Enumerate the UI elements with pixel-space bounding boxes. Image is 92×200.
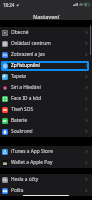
- button[interactable]: Obecné: [0, 27, 92, 38]
- staticText: Tíseň SOS: [11, 106, 85, 113]
- button[interactable]: Siri a Hledání: [0, 82, 92, 93]
- button[interactable]: Zobrazení a jas: [0, 49, 92, 60]
- button[interactable]: Zpřístupnění: [0, 60, 92, 71]
- staticText: Wallet a Apple Pay: [11, 159, 85, 166]
- button[interactable]: Face ID a kód: [0, 93, 92, 104]
- staticText: Ovládací centrum: [11, 40, 85, 47]
- staticText: Baterie: [11, 117, 85, 124]
- staticText: Siri a Hledání: [11, 84, 85, 91]
- button[interactable]: Ovládací centrum: [0, 38, 92, 49]
- staticText: Zpřístupnění: [11, 62, 85, 69]
- button[interactable]: iTunes a App Store: [0, 146, 92, 157]
- button[interactable]: Wallet a Apple Pay: [0, 157, 92, 168]
- staticText: Tapeta: [11, 73, 85, 80]
- staticText: Soukromí: [11, 128, 85, 135]
- button[interactable]: Tíseň SOS: [0, 104, 92, 115]
- staticText: iTunes a App Store: [11, 148, 85, 155]
- staticText: Face ID a kód: [11, 95, 85, 102]
- button[interactable]: Tapeta: [0, 71, 92, 82]
- button[interactable]: Baterie: [0, 115, 92, 126]
- staticText: Obecné: [11, 29, 85, 36]
- button[interactable]: Soukromí: [0, 126, 92, 137]
- button[interactable]: Hesla a účty: [0, 174, 92, 185]
- staticText: 18:24: [3, 2, 15, 8]
- button[interactable]: Pošta: [0, 185, 92, 196]
- staticText: Nastavení: [33, 13, 60, 20]
- staticText: Zobrazení a jas: [11, 51, 85, 58]
- staticText: Hesla a účty: [11, 176, 85, 183]
- staticText: Pošta: [11, 187, 85, 194]
